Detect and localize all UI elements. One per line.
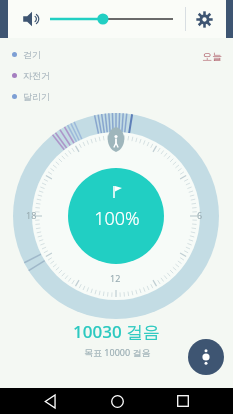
staticText: 12 (110, 272, 121, 284)
button[interactable]: 걷기 (8, 48, 45, 61)
staticText: 목표 10000 걸음 (84, 346, 151, 358)
staticText: 18 (26, 209, 37, 221)
button[interactable] (0, 0, 233, 414)
staticText: 10030 걸음 (73, 320, 161, 343)
staticText: 자전거 (23, 70, 50, 81)
staticText: 6 (197, 209, 203, 221)
button[interactable]: Home (100, 388, 134, 414)
button[interactable]: Volume (20, 7, 44, 31)
button[interactable]: 달리기 (8, 90, 54, 103)
button[interactable]: 자전거 (8, 69, 54, 82)
button[interactable]: Recents (166, 388, 200, 414)
staticText: 달리기 (23, 91, 50, 102)
button[interactable]: 10030 걸음 (73, 320, 161, 358)
button[interactable] (50, 4, 179, 34)
button[interactable]: 오늘 (199, 48, 225, 65)
button[interactable]: Back (33, 388, 67, 414)
staticText: 걷기 (23, 49, 41, 60)
button[interactable]: Settings (191, 6, 217, 32)
staticText: 100% (94, 206, 140, 231)
button[interactable]: More options (188, 339, 224, 375)
staticText: 오늘 (202, 50, 222, 63)
